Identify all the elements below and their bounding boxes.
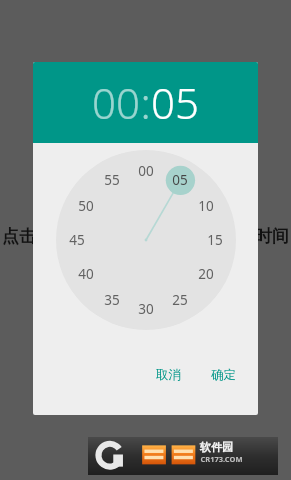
staticText: 45 bbox=[69, 231, 85, 249]
staticText: 50 bbox=[78, 197, 94, 215]
staticText: 05 bbox=[172, 171, 188, 189]
staticText: CR173.COM bbox=[200, 454, 243, 464]
staticText: 35 bbox=[104, 291, 120, 309]
staticText: 确定 bbox=[211, 367, 236, 383]
button[interactable]: 取消 bbox=[147, 361, 190, 389]
button[interactable]: 00 bbox=[92, 74, 140, 131]
button[interactable]: 00 bbox=[56, 150, 236, 330]
staticText: 点击 bbox=[2, 226, 36, 247]
staticText: 取消 bbox=[156, 367, 181, 383]
staticText: 10 bbox=[198, 197, 214, 215]
staticText: 05 bbox=[151, 74, 199, 131]
staticText: 15 bbox=[207, 231, 223, 249]
staticText: 30 bbox=[138, 300, 154, 318]
staticText: 时间 bbox=[255, 226, 289, 247]
staticText: 00 bbox=[138, 162, 154, 180]
button[interactable]: 确定 bbox=[202, 361, 245, 389]
staticText: 55 bbox=[104, 171, 120, 189]
staticText: 软件园 bbox=[200, 440, 233, 454]
staticText: 25 bbox=[172, 291, 188, 309]
staticText: 20 bbox=[198, 265, 214, 283]
staticText: 00 bbox=[92, 74, 140, 131]
staticText: 40 bbox=[78, 265, 94, 283]
button[interactable]: 05 bbox=[151, 74, 199, 131]
other: Watermark bbox=[88, 437, 278, 475]
staticText: : bbox=[140, 74, 151, 131]
